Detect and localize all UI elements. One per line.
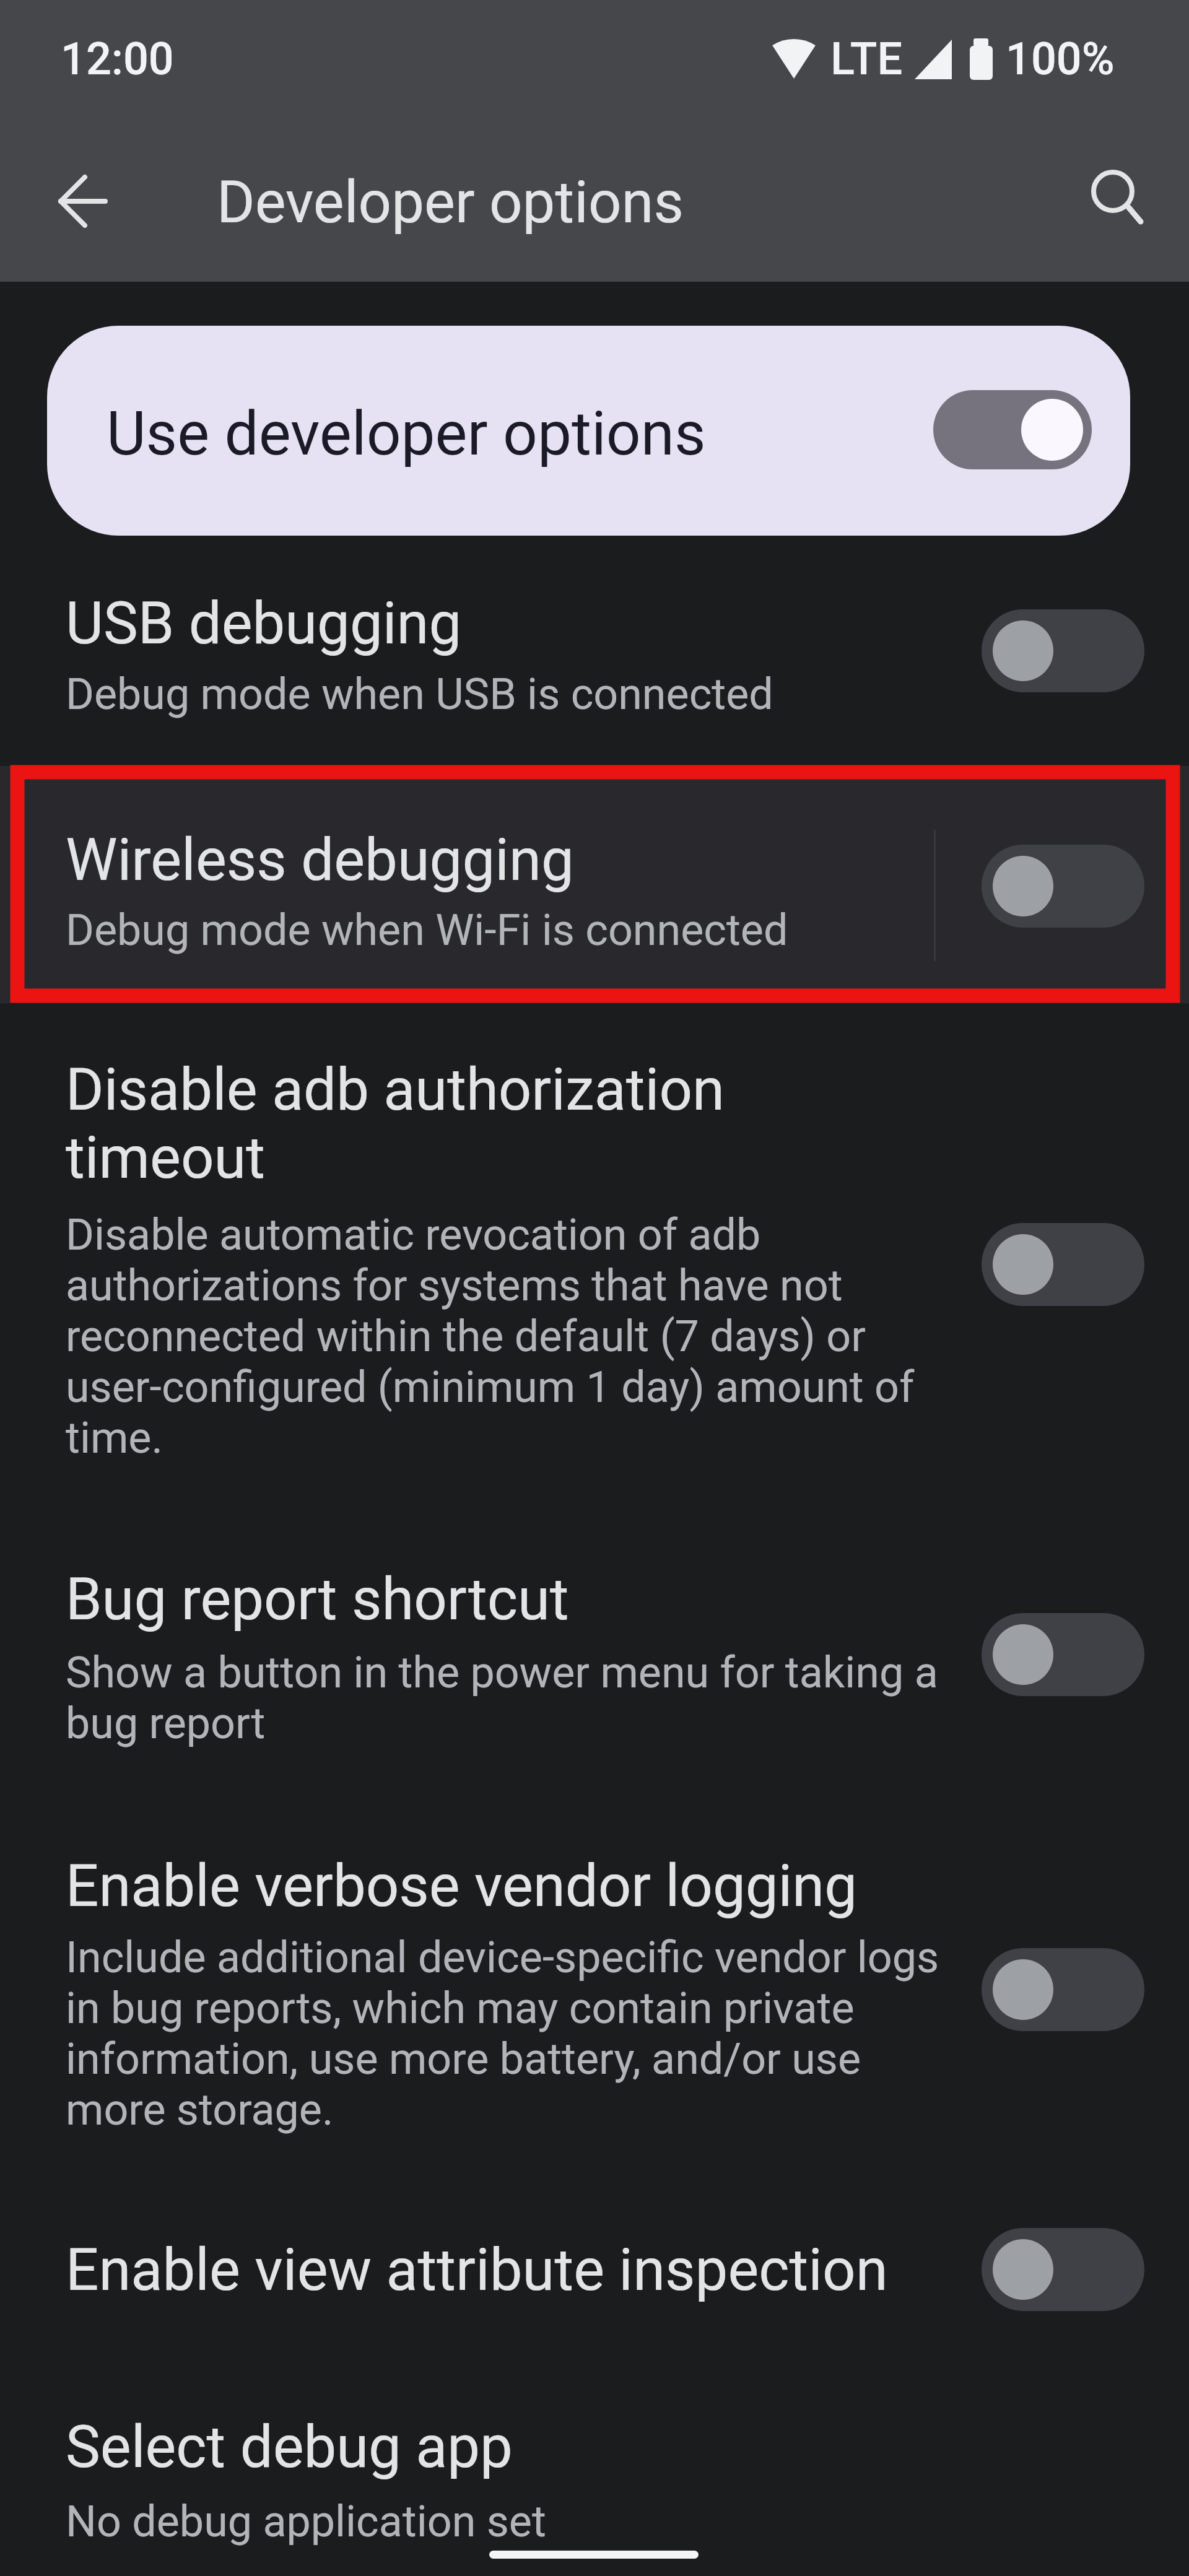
staticText: Wireless debugging <box>66 826 574 894</box>
button[interactable] <box>982 609 1144 692</box>
staticText: Debug mode when Wi-Fi is connected <box>66 905 788 955</box>
staticText: 12:00 <box>61 33 174 85</box>
button[interactable] <box>982 1948 1144 2031</box>
staticText: Enable verbose vendor logging <box>66 1852 858 1920</box>
staticText: 100% <box>1006 33 1115 85</box>
staticText: No debug application set <box>66 2496 546 2547</box>
staticText: Enable view attribute inspection <box>66 2236 888 2304</box>
staticText: Use developer options <box>107 398 706 469</box>
staticText: USB debugging <box>66 590 462 658</box>
button[interactable] <box>933 390 1092 469</box>
button[interactable] <box>1072 150 1154 232</box>
button[interactable] <box>0 1554 1189 1752</box>
button[interactable] <box>0 1046 1189 1511</box>
staticText: LTE <box>830 33 903 85</box>
button[interactable] <box>982 845 1144 928</box>
button[interactable] <box>982 2228 1144 2311</box>
staticText: Disable adb authorization timeout <box>66 1056 725 1192</box>
button[interactable] <box>0 2396 1189 2557</box>
staticText: Debug mode when USB is connected <box>66 669 773 720</box>
staticText: Show a button in the power menu for taki… <box>66 1647 938 1749</box>
staticText: Include additional device-specific vendo… <box>66 1932 939 2135</box>
staticText: Select debug app <box>66 2413 513 2481</box>
button[interactable] <box>0 766 1189 1003</box>
button[interactable] <box>0 2223 1189 2322</box>
staticText: Developer options <box>217 168 684 237</box>
button[interactable] <box>47 326 1130 536</box>
button[interactable] <box>982 1613 1144 1696</box>
button[interactable] <box>0 1842 1189 2149</box>
button[interactable] <box>0 582 1189 731</box>
staticText: Bug report shortcut <box>66 1565 569 1634</box>
button[interactable] <box>42 160 124 242</box>
staticText: Disable automatic revocation of adb auth… <box>66 1209 915 1463</box>
button[interactable] <box>982 1223 1144 1306</box>
